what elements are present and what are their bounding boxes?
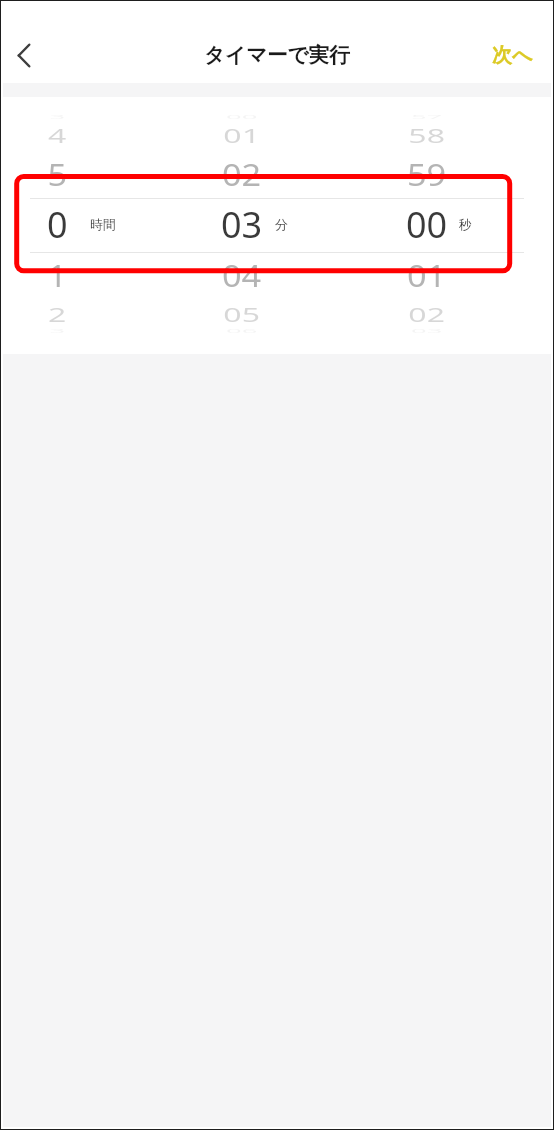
staticText: 2: [48, 301, 67, 328]
staticText: 04: [222, 254, 262, 296]
staticText: 4: [48, 122, 67, 149]
staticText: 5: [47, 153, 68, 195]
button[interactable]: 秒を選択: [369, 97, 554, 354]
staticText: 06: [226, 327, 258, 335]
button[interactable]: 分を選択: [184, 97, 369, 354]
staticText: 02: [408, 301, 446, 328]
staticText: 01: [223, 122, 261, 149]
staticText: 時間: [90, 217, 116, 233]
button[interactable]: 時間を選択: [0, 97, 184, 354]
staticText: 1: [47, 254, 68, 296]
staticText: 05: [223, 301, 261, 328]
staticText: タイマーで実行: [204, 42, 350, 68]
staticText: 分: [275, 217, 288, 233]
staticText: 00: [226, 113, 258, 121]
button[interactable]: Back: [0, 26, 47, 84]
staticText: 00: [406, 200, 448, 249]
button[interactable]: 次へ: [471, 27, 554, 84]
staticText: 03: [221, 200, 263, 249]
staticText: 02: [222, 153, 262, 195]
staticText: 秒: [459, 217, 472, 233]
staticText: 59: [407, 153, 447, 195]
staticText: 58: [408, 122, 446, 149]
staticText: 次へ: [492, 43, 533, 68]
staticText: 0: [47, 200, 68, 249]
staticText: 01: [407, 254, 447, 296]
